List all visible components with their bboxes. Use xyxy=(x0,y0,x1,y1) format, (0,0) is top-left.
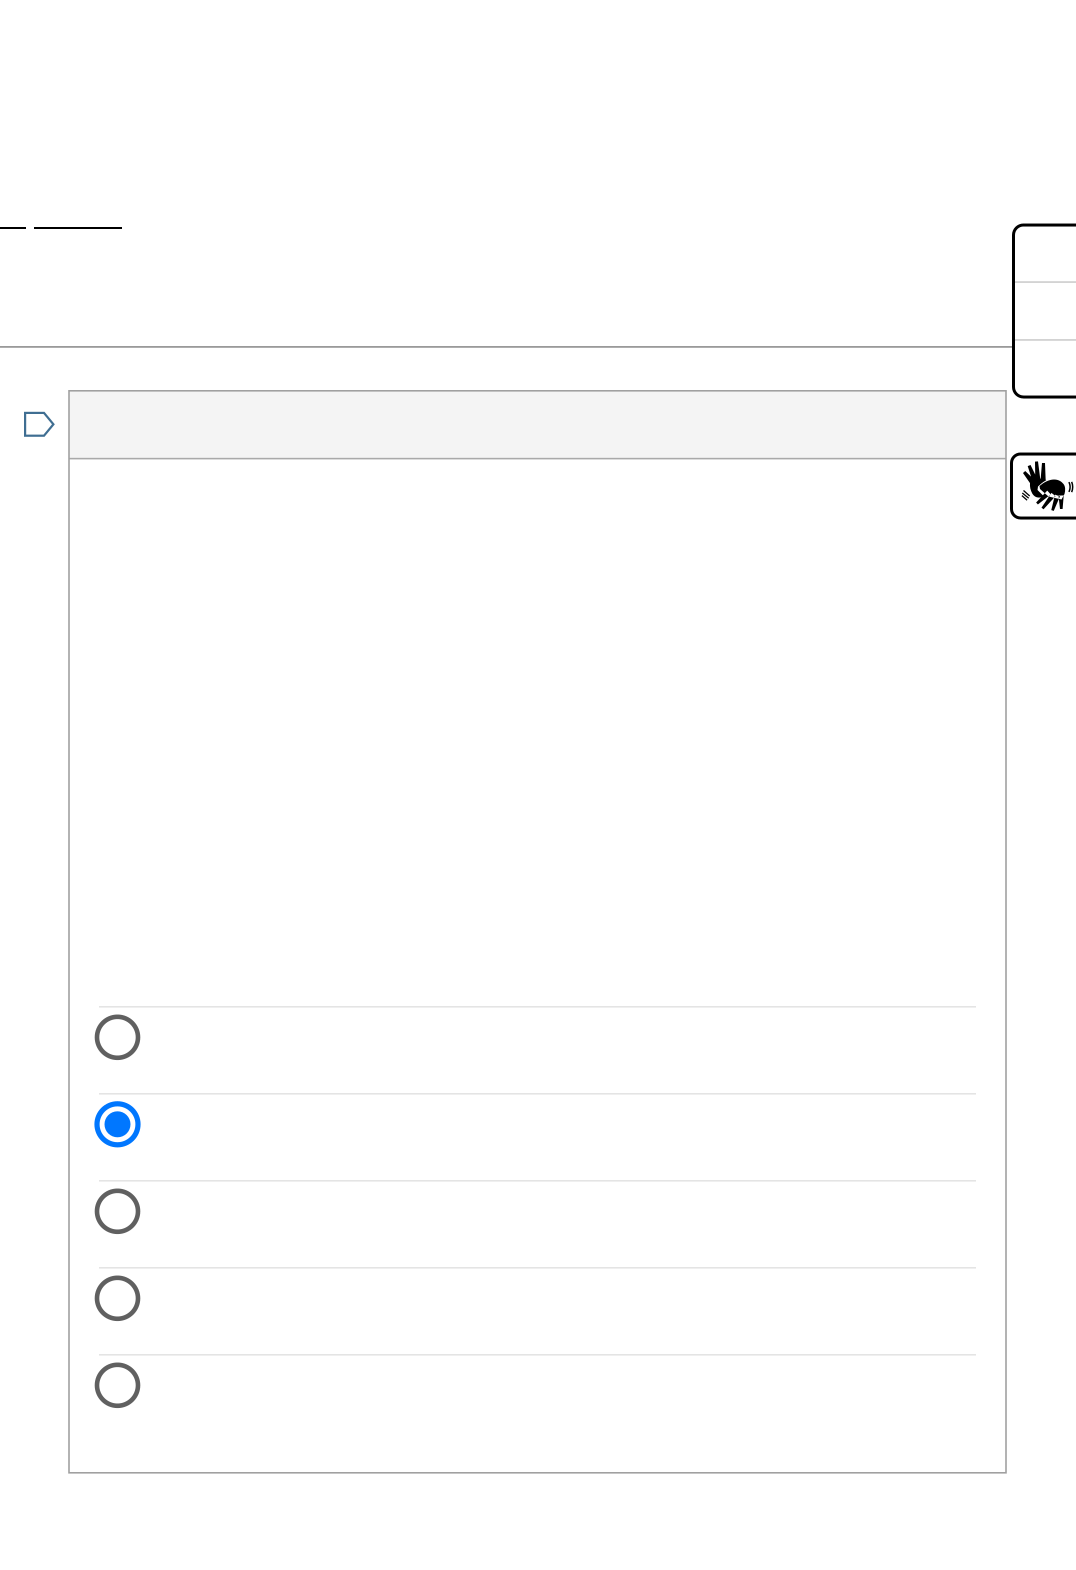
button[interactable] xyxy=(69,1180,1006,1267)
button[interactable]: Accessibility tools xyxy=(1013,225,1076,397)
button[interactable] xyxy=(69,1354,1006,1441)
button[interactable]: Sign language interpretation xyxy=(1011,454,1076,518)
button[interactable] xyxy=(69,1006,1006,1093)
button[interactable] xyxy=(69,1093,1006,1180)
button[interactable] xyxy=(69,1267,1006,1354)
